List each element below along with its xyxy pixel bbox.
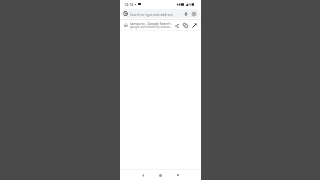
staticText: Search or type web address [130, 12, 182, 16]
button[interactable]: samsung - Google Search [120, 20, 201, 30]
button[interactable]: Share [172, 21, 181, 30]
button[interactable]: Copy [181, 21, 190, 30]
button[interactable]: Search or type web address [121, 9, 200, 18]
button[interactable]: Account [190, 9, 198, 18]
button[interactable]: Edit query [190, 21, 199, 30]
staticText: google.com/search?q=samsung [130, 25, 172, 29]
staticText: 14:14 [124, 2, 134, 7]
button[interactable]: Recents [169, 170, 187, 180]
button[interactable]: Home [151, 170, 169, 180]
button[interactable]: Back [134, 170, 151, 180]
staticText: samsung - Google Search [130, 21, 171, 25]
button[interactable]: Voice search [182, 9, 190, 18]
